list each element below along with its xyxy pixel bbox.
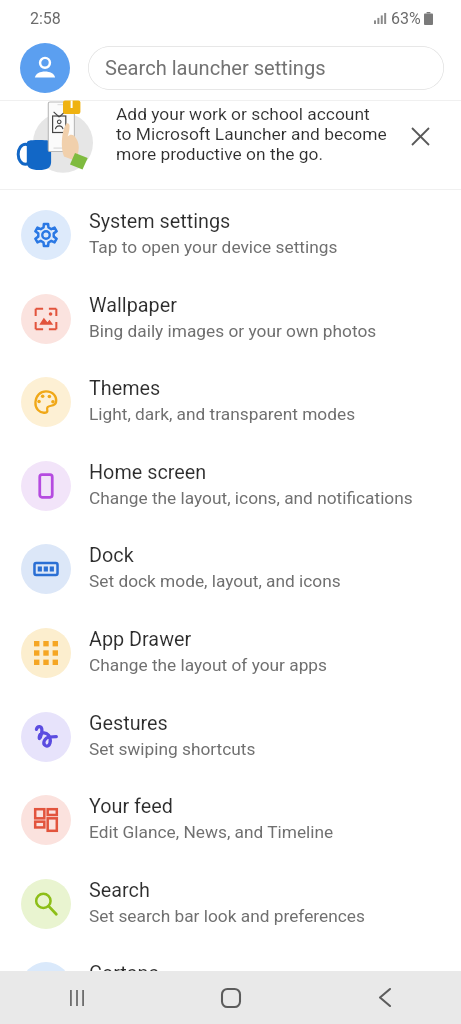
button[interactable]: Search <box>0 858 461 942</box>
staticText: Change the layout of your apps <box>89 655 328 675</box>
button[interactable]: Dismiss <box>404 120 436 152</box>
staticText: Set swiping shortcuts <box>89 739 256 759</box>
staticText: App Drawer <box>89 628 192 651</box>
staticText: Set search bar look and preferences <box>89 906 365 926</box>
button[interactable]: Cortana <box>0 941 461 1024</box>
button[interactable]: System settings <box>0 189 461 273</box>
button[interactable]: Recents <box>0 971 153 1024</box>
staticText: System settings <box>89 210 231 233</box>
staticText: Wallpaper <box>89 294 177 317</box>
staticText: Light, dark, and transparent modes <box>89 404 356 424</box>
button[interactable]: Your feed <box>0 774 461 858</box>
staticText: Dock <box>89 544 134 567</box>
staticText: Add your work or school account to Micro… <box>116 104 387 164</box>
button[interactable]: Search launcher settings <box>88 46 444 90</box>
staticText: Search <box>89 879 150 902</box>
button[interactable]: Wallpaper <box>0 273 461 357</box>
staticText: Cortana <box>89 962 160 985</box>
staticText: Search launcher settings <box>105 56 326 80</box>
button[interactable]: Home <box>153 971 308 1024</box>
staticText: Gestures <box>89 712 168 735</box>
staticText: Set dock mode, layout, and icons <box>89 571 341 591</box>
button[interactable]: Add your work or school account to Micro… <box>0 101 461 189</box>
staticText: Home screen <box>89 461 207 484</box>
staticText: Edit Glance, News, and Timeline <box>89 822 334 842</box>
staticText: Tap to open your device settings <box>89 237 338 257</box>
button[interactable]: Back <box>308 971 461 1024</box>
staticText: Bing daily images or your own photos <box>89 321 377 341</box>
staticText: 63% <box>391 9 421 28</box>
button[interactable]: Home screen <box>0 440 461 524</box>
button[interactable]: App Drawer <box>0 607 461 691</box>
staticText: Your feed <box>89 795 173 818</box>
button[interactable]: Dock <box>0 523 461 607</box>
staticText: Themes <box>89 377 161 400</box>
button[interactable]: Gestures <box>0 691 461 775</box>
button[interactable]: Themes <box>0 356 461 440</box>
staticText: 2:58 <box>30 9 61 28</box>
staticText: Change the layout, icons, and notificati… <box>89 488 413 508</box>
button[interactable]: Account <box>20 43 70 93</box>
